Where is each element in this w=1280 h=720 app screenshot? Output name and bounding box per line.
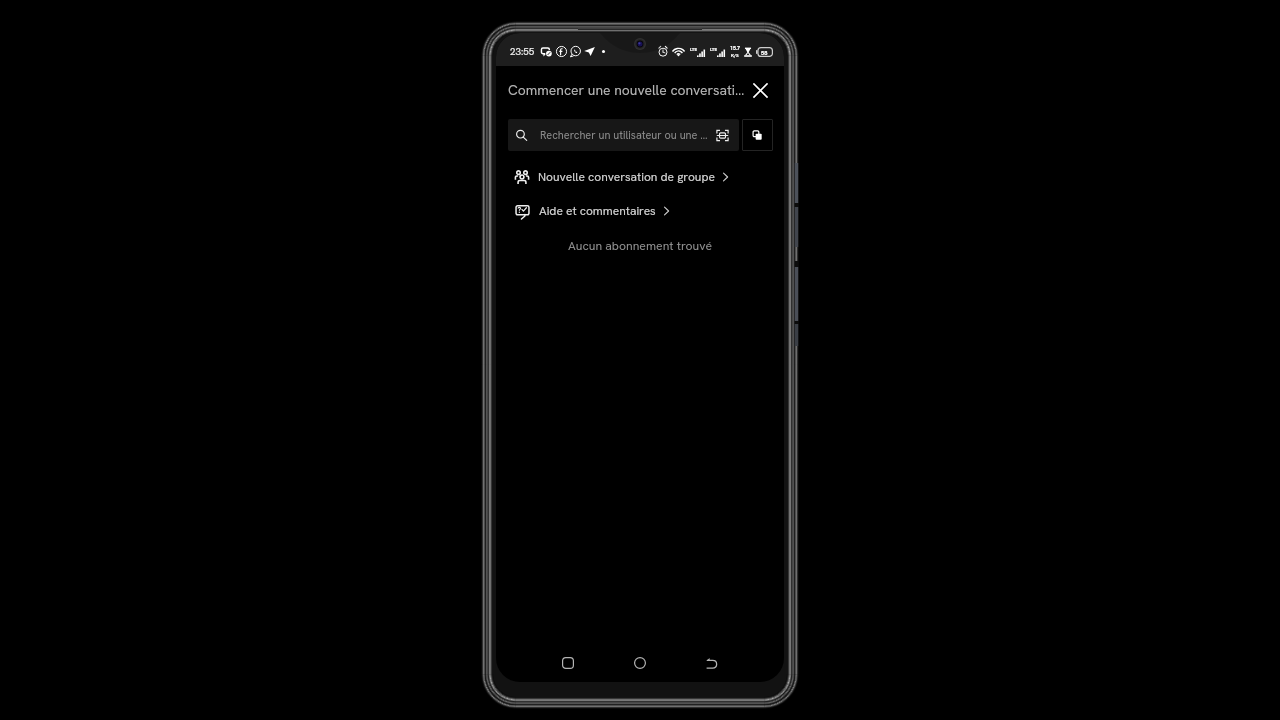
button[interactable]: Scanner un code: [715, 128, 730, 143]
staticText: 58: [761, 49, 768, 56]
button[interactable]: Rechercher un utilisateur ou une …: [508, 119, 739, 151]
staticText: LTE: [710, 46, 718, 52]
button[interactable]: Fenêtres: [742, 119, 773, 151]
button[interactable]: Accueil: [625, 648, 655, 678]
staticText: 23:55: [510, 45, 535, 58]
staticText: Rechercher un utilisateur ou une …: [540, 128, 708, 142]
button[interactable]: Retour: [697, 648, 727, 678]
staticText: LTE: [690, 46, 698, 52]
staticText: Aucun abonnement trouvé: [496, 238, 784, 254]
staticText: Aide et commentaires: [539, 203, 656, 219]
button[interactable]: Récents: [553, 648, 583, 678]
staticText: Commencer une nouvelle conversati…: [508, 81, 747, 99]
button[interactable]: Aide et commentaires: [496, 194, 784, 228]
staticText: 15.7: [730, 45, 740, 52]
staticText: Nouvelle conversation de groupe: [538, 169, 715, 185]
button[interactable]: Nouvelle conversation de groupe: [496, 160, 784, 194]
button[interactable]: Fermer: [747, 77, 773, 103]
staticText: K/S: [731, 52, 739, 58]
